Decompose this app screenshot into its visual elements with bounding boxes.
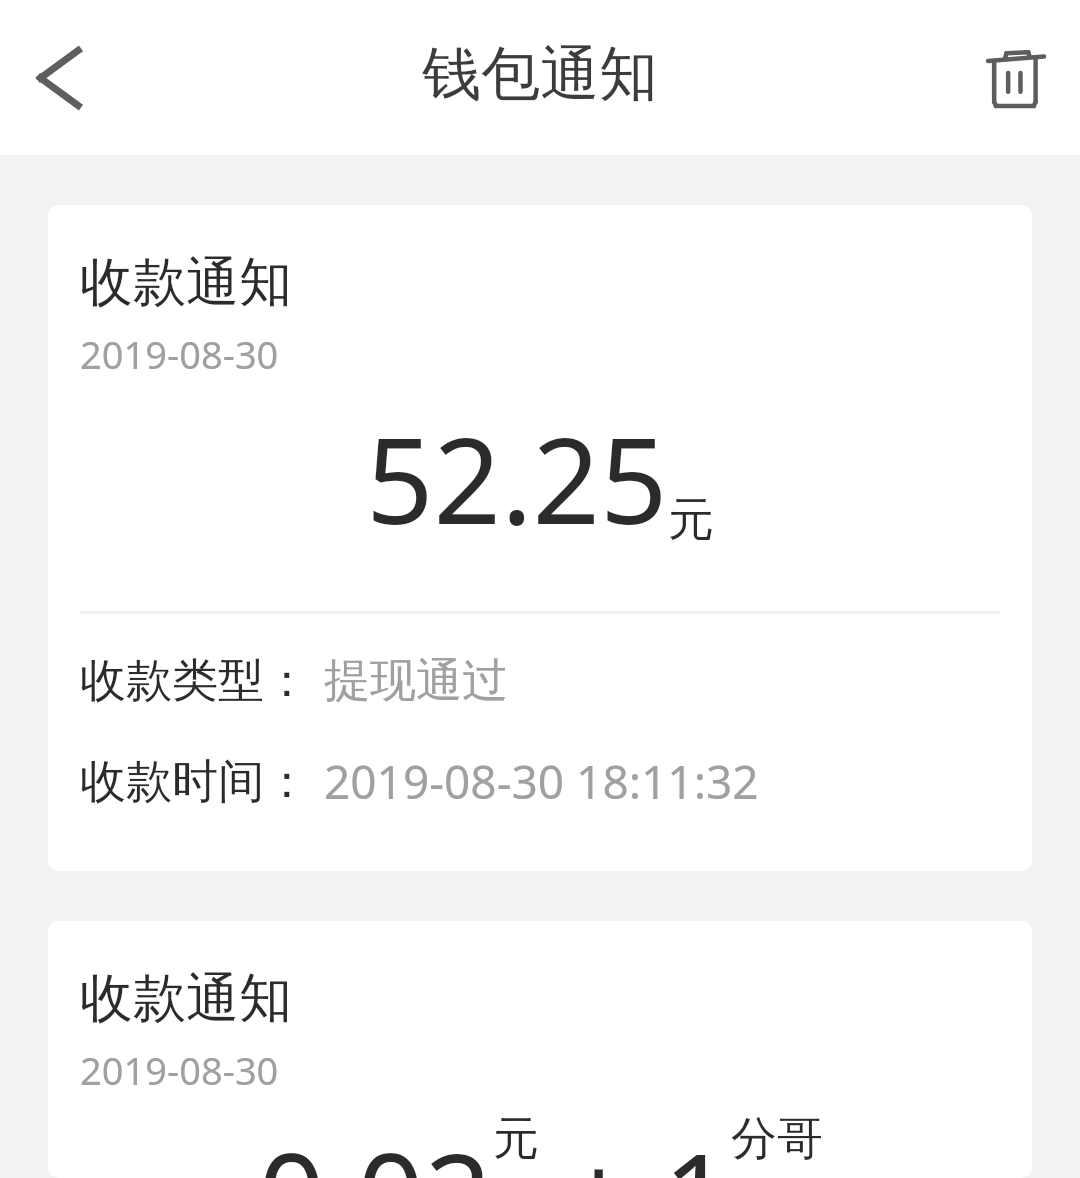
staticText: 分哥 [731,1110,823,1168]
staticText: 提现通过 [324,652,508,710]
button[interactable]: Back [8,23,108,133]
button[interactable]: 收款通知 [48,921,1032,1178]
staticText: 收款类型： [80,652,310,710]
staticText: 2019-08-30 18:11:32 [324,750,759,813]
button[interactable]: Delete [966,23,1066,133]
staticText: 0.02 [258,1114,493,1178]
staticText: 收款通知 [80,249,292,316]
staticText: 收款通知 [80,965,292,1032]
staticText: 收款时间： [80,753,310,811]
button[interactable]: 收款通知 [48,205,1032,871]
staticText: + 1 [565,1114,731,1178]
staticText: 2019-08-30 [80,1044,279,1096]
staticText: 元 [668,491,714,549]
staticText: 元 [493,1110,539,1168]
staticText: 钱包通知 [422,37,658,111]
staticText: 2019-08-30 [80,328,279,380]
staticText: 52.25 [366,398,668,559]
